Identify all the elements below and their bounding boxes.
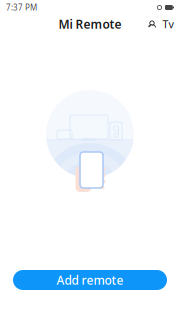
staticText: Tv (162, 17, 173, 31)
staticText: Mi Remote (58, 16, 121, 32)
staticText: Add remote (56, 272, 123, 288)
button[interactable]: TV (160, 16, 176, 32)
button[interactable]: Add remote (13, 270, 167, 290)
staticText: 7:37 PM (6, 2, 37, 13)
button[interactable]: Account (144, 16, 160, 32)
